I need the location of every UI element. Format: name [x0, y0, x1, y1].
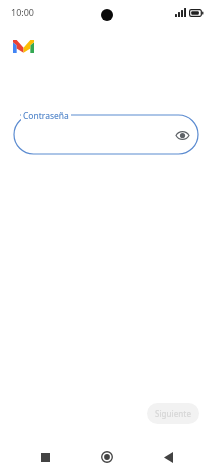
staticText: 10:00 — [11, 6, 35, 18]
staticText: Contraseña — [23, 110, 69, 122]
button[interactable]: Siguiente — [147, 403, 199, 424]
button[interactable]: Inicio — [90, 440, 124, 474]
button[interactable]: Mostrar contraseña — [171, 124, 193, 146]
button[interactable]: Recientes — [28, 440, 62, 474]
staticText: Siguiente — [155, 408, 191, 419]
button[interactable]: Contraseña — [0, 109, 213, 155]
button[interactable]: Atrás — [151, 440, 185, 474]
